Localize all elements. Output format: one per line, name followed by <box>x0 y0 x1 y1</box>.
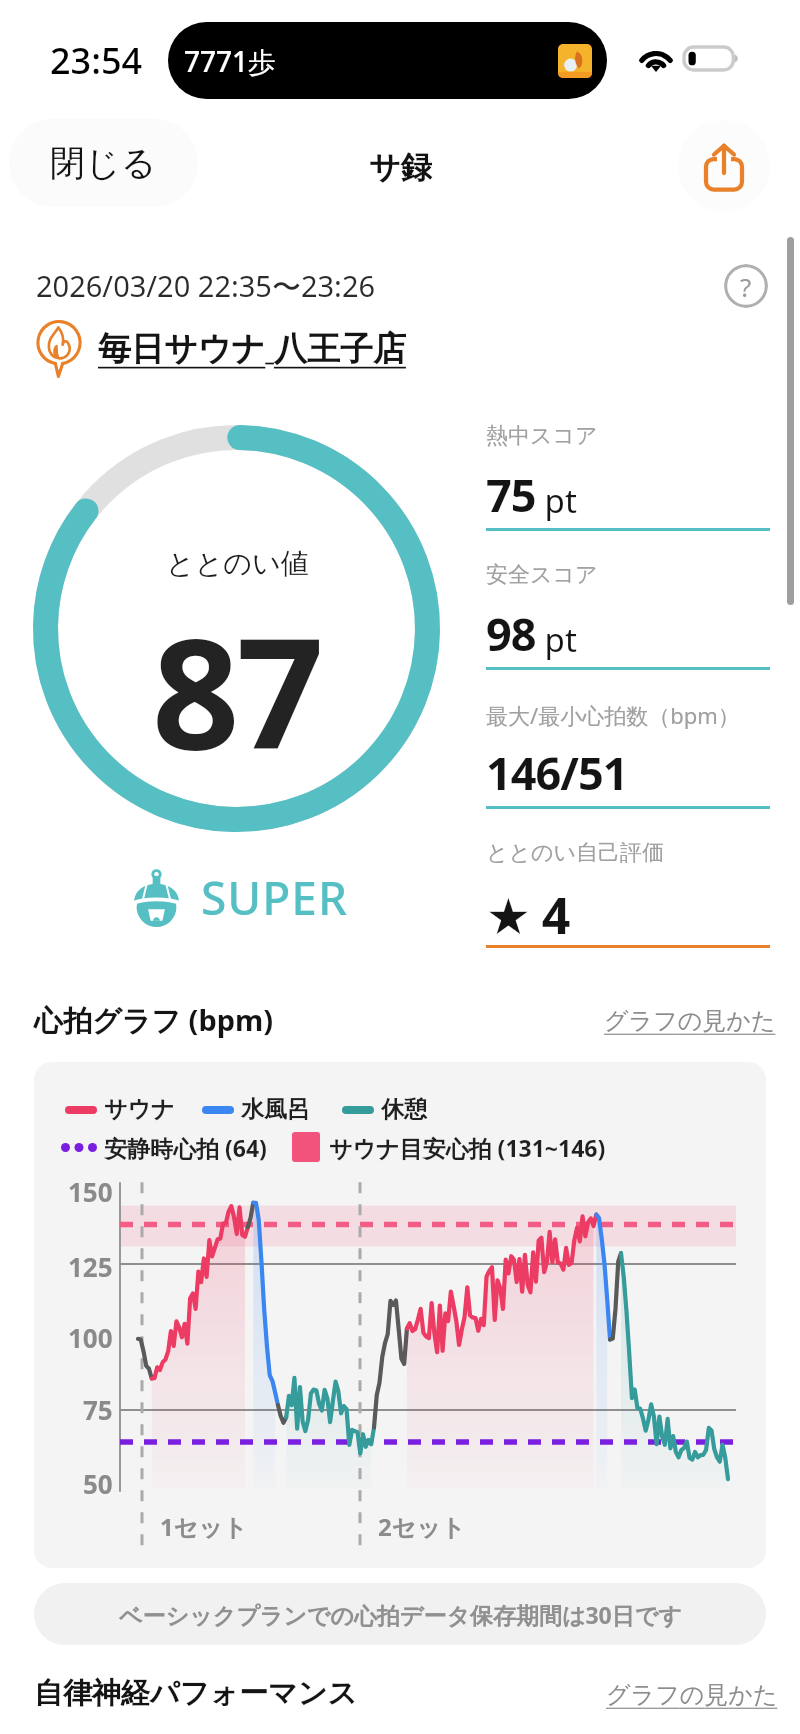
staticText: グラフの見かた <box>604 1006 776 1036</box>
staticText: ★ 4 <box>486 881 570 949</box>
staticText: 2026/03/20 22:35〜23:26 <box>36 266 376 306</box>
button[interactable]: グラフの見かた <box>606 1680 778 1710</box>
staticText: 87 <box>152 585 322 793</box>
staticText: 50 <box>83 1466 113 1501</box>
staticText: 100 <box>68 1320 113 1355</box>
staticText: 熱中スコア <box>486 422 598 450</box>
staticText: ベーシックプランでの心拍データ保存期間は30日です <box>119 1599 682 1630</box>
staticText: 125 <box>68 1249 113 1284</box>
button[interactable]: Help <box>724 264 768 308</box>
staticText: SUPER <box>201 866 349 929</box>
staticText: 閉じる <box>50 141 157 185</box>
staticText: サウナ <box>104 1095 175 1124</box>
staticText: 毎日サウナ 八王子店 <box>98 325 406 370</box>
staticText: pt <box>536 478 577 523</box>
staticText: 98 <box>486 603 536 664</box>
staticText: 最大/最小心拍数（bpm） <box>486 700 740 730</box>
staticText: 心拍グラフ (bpm) <box>34 1000 274 1040</box>
staticText: 23:54 <box>50 36 143 85</box>
staticText: ? <box>740 269 752 304</box>
staticText: 75 <box>83 1392 113 1427</box>
staticText: サ録 <box>369 148 432 187</box>
staticText: 休憩 <box>381 1095 427 1124</box>
button[interactable]: グラフの見かた <box>604 1006 776 1036</box>
staticText: グラフの見かた <box>606 1680 778 1710</box>
staticText: 水風呂 <box>241 1095 310 1124</box>
staticText: 2セット <box>378 1510 466 1543</box>
button[interactable]: 毎日サウナ 八王子店 <box>28 316 800 378</box>
staticText: 75 <box>486 464 536 525</box>
staticText: 7771歩 <box>184 42 277 80</box>
button[interactable]: 閉じる <box>9 119 198 207</box>
staticText: 1セット <box>160 1510 248 1543</box>
staticText: 146/51 <box>486 742 628 803</box>
staticText: 150 <box>68 1174 113 1209</box>
staticText: 自律神経パフォーマンス <box>34 1675 358 1712</box>
staticText: 安全スコア <box>486 561 598 589</box>
staticText: ととのい自己評価 <box>486 839 665 867</box>
staticText: サウナ目安心拍 (131~146) <box>329 1132 606 1162</box>
staticText: ととのい値 <box>166 546 309 581</box>
button[interactable]: Share <box>678 120 770 212</box>
staticText: pt <box>536 617 577 662</box>
staticText: 安静時心拍 (64) <box>104 1132 267 1162</box>
